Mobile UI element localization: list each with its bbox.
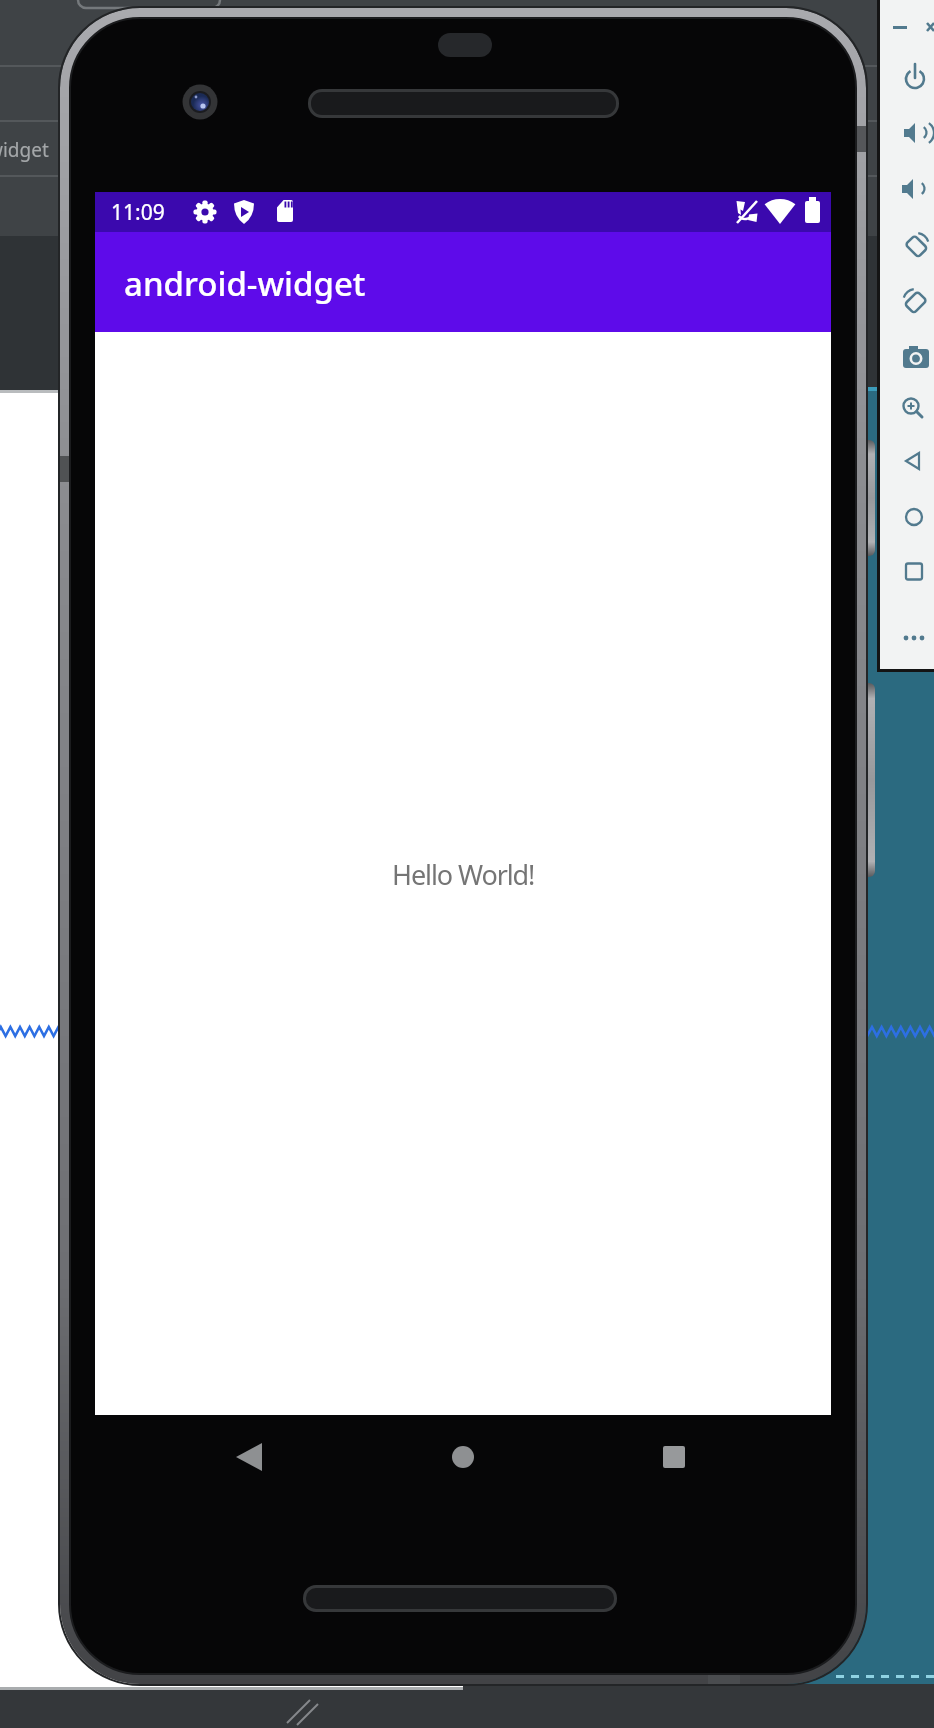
button[interactable] — [892, 439, 934, 483]
staticText: widget — [0, 137, 49, 163]
button[interactable] — [892, 616, 934, 660]
button[interactable] — [640, 1423, 708, 1491]
button[interactable] — [892, 387, 934, 431]
button[interactable] — [892, 495, 934, 539]
button[interactable] — [886, 12, 914, 40]
button[interactable] — [429, 1423, 497, 1491]
button[interactable] — [892, 336, 934, 380]
staticText: Hello World! — [392, 856, 535, 893]
staticText: android-widget — [124, 261, 366, 306]
button[interactable] — [892, 167, 934, 211]
button[interactable] — [892, 280, 934, 324]
staticText: 11:09 — [111, 198, 165, 227]
button[interactable] — [892, 224, 934, 268]
button[interactable] — [215, 1423, 283, 1491]
button[interactable] — [892, 550, 934, 594]
button[interactable] — [892, 111, 934, 155]
button[interactable] — [892, 56, 934, 100]
